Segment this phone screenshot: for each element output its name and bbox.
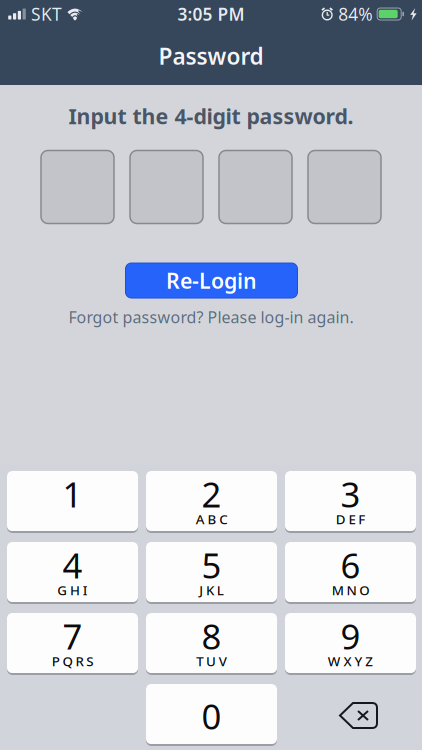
staticText: 1: [62, 471, 82, 517]
staticText: M: [332, 581, 344, 599]
staticText: Z: [365, 652, 373, 670]
staticText: H: [70, 581, 80, 599]
staticText: B: [207, 510, 216, 528]
button[interactable]: 5: [146, 542, 277, 604]
staticText: Input the 4-digit password.: [68, 102, 353, 130]
staticText: P: [52, 652, 60, 670]
staticText: J: [199, 581, 203, 599]
staticText: 2: [201, 471, 221, 517]
button[interactable]: 0: [146, 684, 277, 746]
staticText: X: [344, 652, 352, 670]
staticText: E: [348, 510, 355, 528]
staticText: Re-Login: [166, 266, 257, 295]
button[interactable]: 4: [7, 542, 138, 604]
staticText: D: [336, 510, 346, 528]
staticText: 9: [340, 613, 360, 659]
staticText: 7: [62, 613, 82, 659]
staticText: F: [358, 510, 365, 528]
staticText: W: [328, 652, 341, 670]
staticText: 6: [340, 542, 360, 588]
button[interactable]: Delete: [285, 684, 416, 746]
staticText: A: [196, 510, 205, 528]
button[interactable]: 1: [7, 471, 138, 533]
staticText: 4: [62, 542, 82, 588]
button[interactable]: Re-Login: [125, 263, 297, 298]
staticText: S: [86, 652, 93, 670]
staticText: C: [219, 510, 227, 528]
staticText: I: [83, 581, 88, 599]
staticText: 3:05 PM: [177, 2, 244, 25]
button[interactable]: 7: [7, 613, 138, 675]
button[interactable]: 9: [285, 613, 416, 675]
button[interactable]: 3: [285, 471, 416, 533]
staticText: Q: [63, 652, 73, 670]
staticText: U: [206, 652, 216, 670]
staticText: SKT: [31, 2, 62, 25]
staticText: Forgot password? Please log-in again.: [68, 306, 353, 328]
button[interactable]: 2: [146, 471, 277, 533]
staticText: O: [359, 581, 369, 599]
button[interactable]: 6: [285, 542, 416, 604]
staticText: K: [206, 581, 214, 599]
staticText: 0: [201, 693, 221, 739]
button[interactable]: 8: [146, 613, 277, 675]
staticText: 8: [201, 613, 221, 659]
staticText: Password: [158, 41, 263, 71]
staticText: N: [346, 581, 356, 599]
staticText: V: [219, 652, 227, 670]
staticText: L: [217, 581, 224, 599]
staticText: 84%: [338, 2, 372, 25]
staticText: G: [57, 581, 67, 599]
staticText: R: [75, 652, 83, 670]
staticText: 5: [201, 542, 221, 588]
staticText: 3: [340, 471, 360, 517]
staticText: Y: [354, 652, 362, 670]
staticText: T: [196, 652, 203, 670]
